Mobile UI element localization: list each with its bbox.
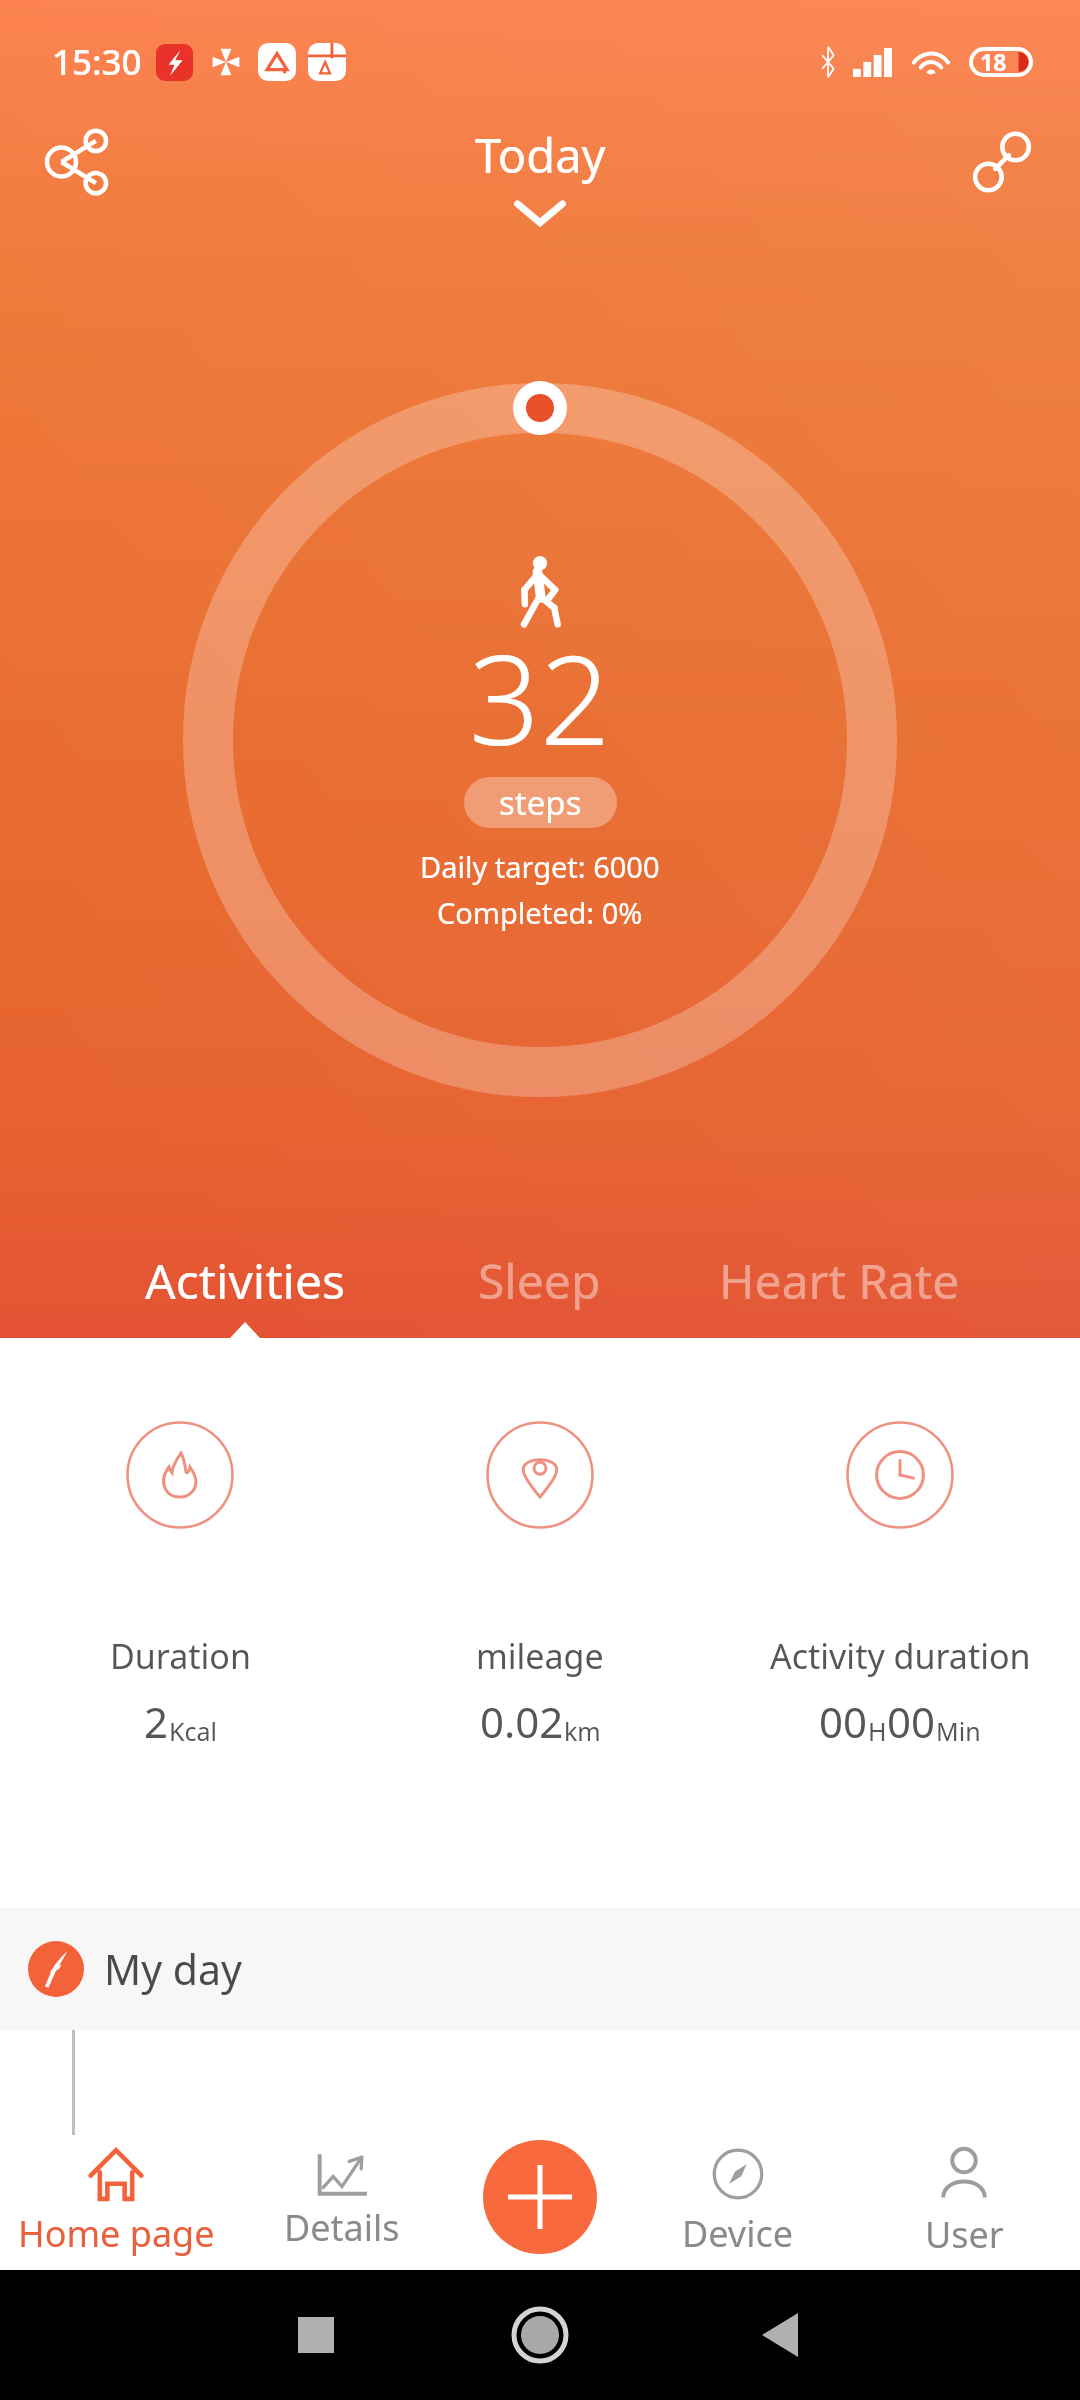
button[interactable]: mileage	[360, 1338, 720, 1898]
button[interactable]: Recents	[276, 2295, 356, 2375]
staticText: User	[925, 2210, 1004, 2259]
staticText: km	[564, 1714, 601, 1748]
staticText: 0.02	[480, 1693, 564, 1750]
staticText: Today	[475, 123, 606, 187]
button[interactable]: Activities	[95, 1220, 395, 1338]
button[interactable]: Home	[497, 2292, 583, 2378]
staticText: Duration	[110, 1633, 251, 1679]
button[interactable]: Duration	[0, 1338, 360, 1898]
staticText: Heart Rate	[719, 1248, 960, 1313]
staticText: Sleep	[478, 1248, 601, 1313]
staticText: 00	[887, 1693, 936, 1750]
staticText: Min	[936, 1714, 981, 1748]
button[interactable]: Link device	[950, 110, 1054, 214]
button[interactable]: Activity duration	[720, 1338, 1080, 1898]
button[interactable]: Device	[628, 2135, 848, 2270]
staticText: Daily target: 6000	[420, 847, 660, 886]
staticText: 32	[469, 612, 611, 781]
staticText: Kcal	[169, 1714, 217, 1748]
staticText: H	[868, 1714, 887, 1748]
staticText: 2	[144, 1693, 169, 1750]
button[interactable]: Heart Rate	[689, 1220, 989, 1338]
staticText: My day	[104, 1941, 242, 1997]
staticText: Activity duration	[770, 1633, 1031, 1679]
staticText: Home page	[18, 2209, 215, 2258]
staticText: 00	[819, 1693, 868, 1750]
staticText: 18	[980, 46, 1007, 76]
button[interactable]: Today	[445, 117, 636, 193]
staticText: mileage	[476, 1633, 604, 1679]
staticText: steps	[499, 780, 582, 825]
button[interactable]: Sleep	[389, 1220, 689, 1338]
staticText: 15:30	[52, 38, 142, 86]
staticText: Device	[682, 2209, 794, 2258]
button[interactable]: steps	[464, 777, 617, 828]
staticText: Details	[284, 2203, 400, 2252]
button[interactable]: My day	[0, 1908, 1080, 2030]
staticText: Activities	[145, 1248, 345, 1313]
button[interactable]: User	[848, 2135, 1080, 2270]
button[interactable]: Home page	[0, 2135, 232, 2270]
staticText: Completed: 0%	[437, 893, 643, 932]
button[interactable]: Details	[232, 2135, 452, 2270]
button[interactable]: Back	[740, 2295, 820, 2375]
button[interactable]: Add	[483, 2140, 597, 2254]
button[interactable]: Share	[26, 110, 130, 214]
